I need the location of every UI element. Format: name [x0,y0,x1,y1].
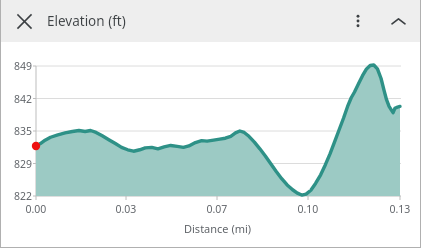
button[interactable]: Collapse [381,4,415,38]
button[interactable]: Close [8,5,40,37]
button[interactable]: Elevation (ft) [47,0,126,42]
button[interactable]: More options [341,4,375,38]
staticText: Elevation (ft) [47,12,126,30]
